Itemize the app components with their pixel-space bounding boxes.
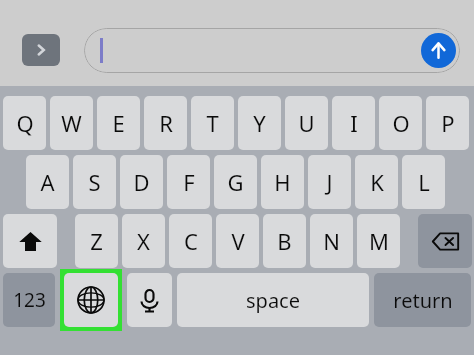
- staticText: F: [183, 167, 195, 197]
- button[interactable]: B: [263, 214, 306, 268]
- button[interactable]: M: [357, 214, 400, 268]
- staticText: E: [112, 108, 125, 138]
- button[interactable]: Shift: [3, 214, 57, 268]
- staticText: X: [137, 226, 150, 256]
- button[interactable]: U: [285, 96, 328, 150]
- staticText: B: [277, 226, 292, 256]
- button[interactable]: I: [332, 96, 375, 150]
- staticText: K: [370, 167, 384, 197]
- button[interactable]: V: [216, 214, 259, 268]
- button[interactable]: A: [26, 155, 69, 209]
- staticText: V: [231, 226, 245, 256]
- button[interactable]: Send: [84, 28, 460, 73]
- button[interactable]: H: [261, 155, 304, 209]
- staticText: D: [133, 167, 150, 197]
- staticText: C: [184, 226, 198, 256]
- staticText: N: [323, 226, 340, 256]
- button[interactable]: K: [355, 155, 398, 209]
- button[interactable]: Send: [421, 33, 456, 68]
- button[interactable]: space: [177, 273, 369, 327]
- button[interactable]: F: [167, 155, 210, 209]
- button[interactable]: Dictate: [127, 273, 172, 327]
- staticText: return: [393, 287, 453, 314]
- staticText: U: [298, 108, 315, 138]
- button[interactable]: P: [426, 96, 469, 150]
- staticText: O: [392, 108, 410, 138]
- button[interactable]: G: [214, 155, 257, 209]
- staticText: H: [274, 167, 291, 197]
- staticText: R: [159, 108, 173, 138]
- button[interactable]: O: [379, 96, 422, 150]
- staticText: T: [206, 108, 219, 138]
- staticText: M: [369, 226, 389, 256]
- button[interactable]: X: [122, 214, 165, 268]
- button[interactable]: R: [144, 96, 187, 150]
- button[interactable]: Y: [238, 96, 281, 150]
- button[interactable]: Backspace: [418, 214, 472, 268]
- staticText: space: [246, 287, 300, 314]
- staticText: S: [88, 167, 101, 197]
- button[interactable]: D: [120, 155, 163, 209]
- button[interactable]: return: [374, 273, 471, 327]
- button[interactable]: L: [402, 155, 445, 209]
- button[interactable]: Q: [3, 96, 46, 150]
- button[interactable]: Change keyboard: [64, 273, 118, 327]
- staticText: I: [350, 108, 358, 138]
- button[interactable]: C: [169, 214, 212, 268]
- staticText: 123: [13, 287, 46, 313]
- staticText: G: [227, 167, 244, 197]
- staticText: A: [40, 167, 55, 197]
- button[interactable]: E: [97, 96, 140, 150]
- staticText: P: [441, 108, 455, 138]
- button[interactable]: 123: [3, 273, 55, 327]
- staticText: Q: [16, 108, 34, 138]
- button[interactable]: W: [50, 96, 93, 150]
- staticText: J: [326, 167, 333, 197]
- staticText: Y: [253, 108, 266, 138]
- button[interactable]: T: [191, 96, 234, 150]
- button[interactable]: Expand: [22, 34, 60, 66]
- button[interactable]: J: [308, 155, 351, 209]
- staticText: Z: [90, 226, 103, 256]
- staticText: W: [61, 108, 82, 138]
- button[interactable]: N: [310, 214, 353, 268]
- staticText: L: [418, 167, 430, 197]
- button[interactable]: Z: [75, 214, 118, 268]
- button[interactable]: S: [73, 155, 116, 209]
